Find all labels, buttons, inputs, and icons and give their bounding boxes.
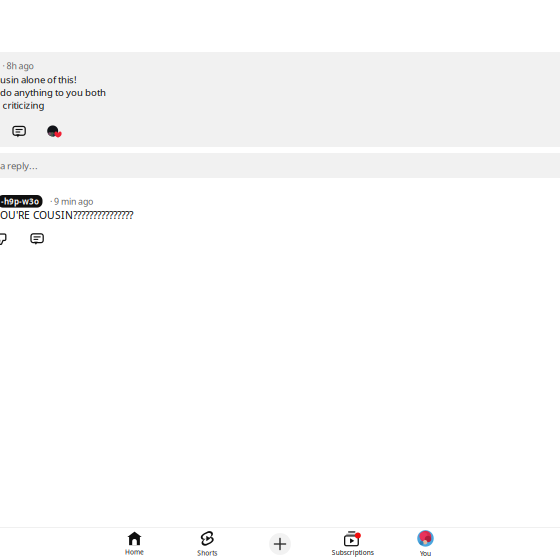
staticText: Shorts: [197, 549, 217, 557]
staticText: You: [420, 549, 431, 558]
staticText: OU'RE COUSIN???????????????: [0, 208, 133, 222]
staticText: usin alone of this!: [0, 73, 77, 86]
staticText: Home: [125, 548, 144, 556]
staticText: · 9 min ago: [50, 195, 93, 207]
staticText: a reply...: [0, 159, 38, 172]
button[interactable]: Shorts: [171, 531, 244, 557]
staticText: -h9p-w3o: [1, 196, 39, 207]
button[interactable]: Subscriptions: [316, 531, 389, 557]
button[interactable]: Home: [98, 531, 171, 557]
staticText: do anything to you both: [0, 86, 106, 99]
button[interactable]: You: [389, 531, 462, 557]
staticText: · 8h ago: [2, 60, 33, 72]
button[interactable]: a reply...: [0, 153, 560, 178]
staticText: Subscriptions: [332, 548, 374, 557]
button[interactable]: Reply: [0, 125, 36, 138]
button[interactable]: Reply: [24, 233, 43, 246]
staticText: criticizing: [2, 99, 44, 111]
button[interactable]: Create: [244, 531, 316, 557]
button[interactable]: Hearted by creator: [36, 125, 62, 138]
button[interactable]: Dislike: [0, 233, 24, 246]
